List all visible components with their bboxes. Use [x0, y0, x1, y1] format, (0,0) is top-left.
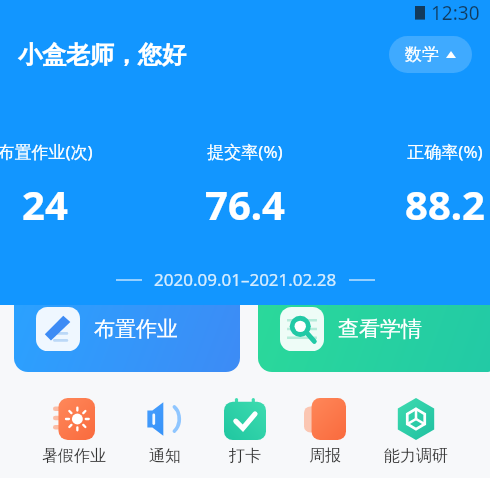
staticText: 76.4 [205, 177, 285, 231]
button[interactable]: 周报 [304, 394, 346, 470]
button[interactable]: 暑假作业 [42, 394, 106, 470]
staticText: 提交率(%) [207, 140, 283, 163]
button[interactable]: 通知 [144, 394, 186, 470]
staticText: 通知 [149, 446, 181, 466]
staticText: 能力调研 [384, 446, 448, 466]
staticText: 查看学情 [338, 316, 422, 342]
staticText: 2020.09.01–2021.02.28 [154, 268, 337, 291]
staticText: 打卡 [229, 446, 261, 466]
staticText: 正确率(%) [407, 140, 483, 163]
staticText: 布置作业(次) [0, 140, 93, 163]
button[interactable]: 查看学情 [258, 286, 490, 372]
staticText: 小盒老师，您好 [18, 40, 186, 70]
button[interactable]: 能力调研 [384, 394, 448, 470]
staticText: 周报 [309, 446, 341, 466]
button[interactable]: 布置作业 [14, 286, 240, 372]
staticText: 数学 [405, 44, 439, 65]
button[interactable]: 数学 [389, 36, 472, 73]
staticText: 布置作业 [94, 316, 178, 342]
staticText: 88.2 [405, 177, 485, 231]
button[interactable]: 打卡 [224, 394, 266, 470]
staticText: 24 [22, 177, 68, 231]
staticText: 12:30 [431, 0, 480, 22]
staticText: 暑假作业 [42, 446, 106, 466]
